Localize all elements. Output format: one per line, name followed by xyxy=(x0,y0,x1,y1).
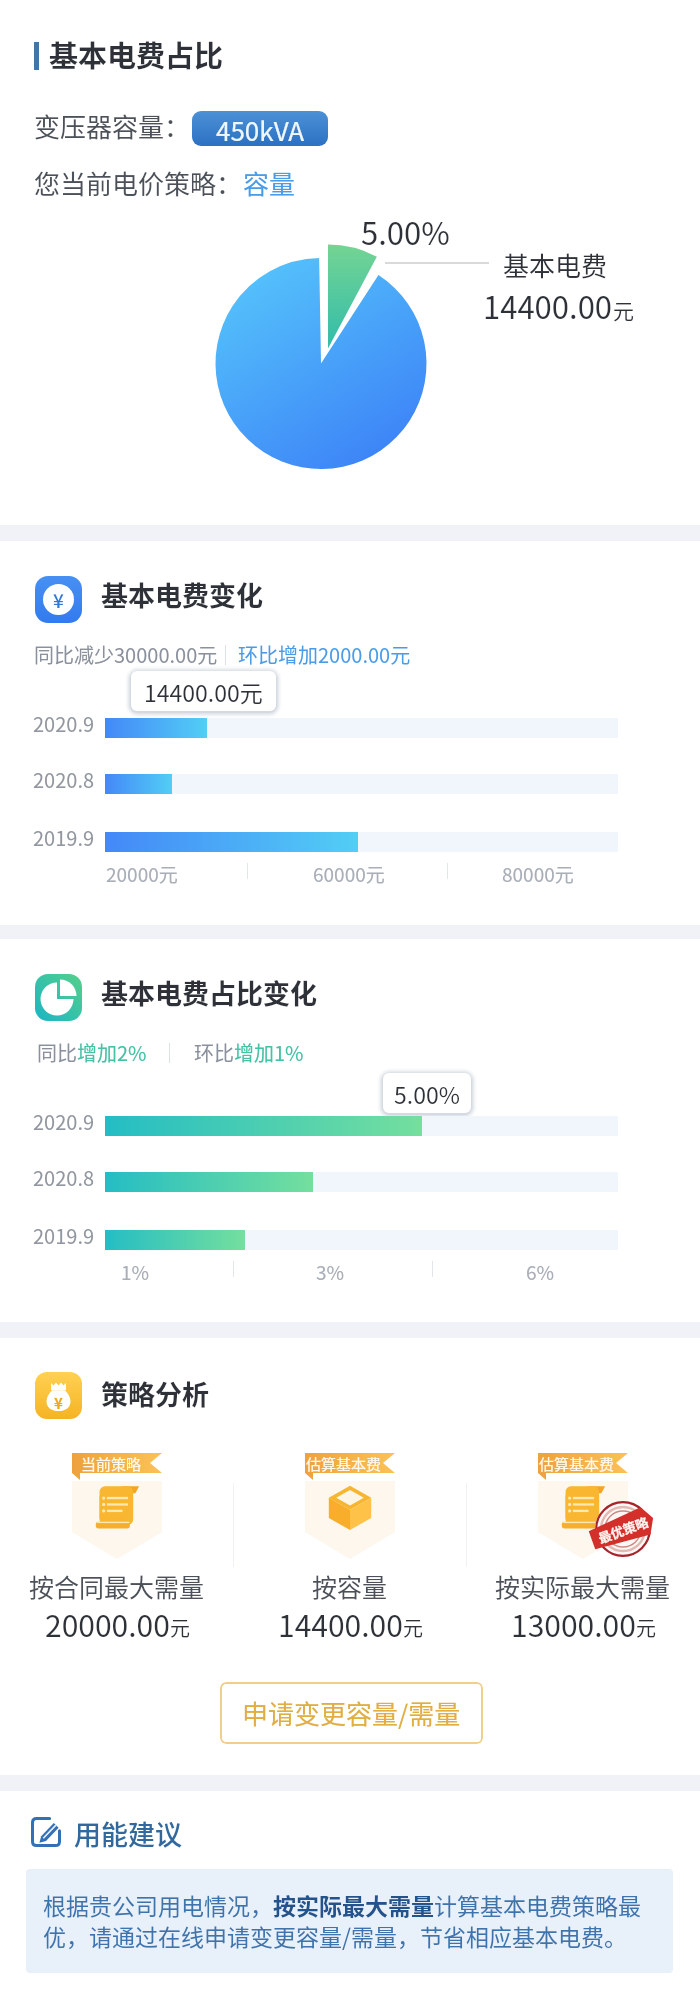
other: 用能建议 xyxy=(31,1817,61,1847)
staticText: 2020.8 xyxy=(33,765,95,794)
staticText: 2020.8 xyxy=(33,1163,95,1192)
staticText: 5.00% xyxy=(361,209,450,254)
staticText: 环比 xyxy=(194,1038,234,1067)
staticText: 用能建议 xyxy=(74,1814,182,1853)
staticText: 估算基本费 xyxy=(306,1453,382,1473)
staticText: 20000元 xyxy=(106,860,178,888)
staticText: 6% xyxy=(526,1258,555,1286)
staticText: 3% xyxy=(316,1258,345,1286)
staticText: 按实际最大需量 xyxy=(495,1568,671,1604)
staticText: 基本电费占比 xyxy=(49,33,224,75)
staticText: 元 xyxy=(170,1613,190,1642)
staticText: 估算基本费 xyxy=(539,1453,615,1473)
staticText: 基本电费变化 xyxy=(101,575,263,614)
staticText: 元 xyxy=(403,1613,423,1642)
staticText: 按合同最大需量 xyxy=(29,1568,205,1604)
staticText: 2019.9 xyxy=(33,823,95,852)
staticText: 13000.00 xyxy=(511,1602,636,1645)
staticText: 450kVA xyxy=(216,111,305,146)
staticText: 当前策略 xyxy=(81,1453,142,1473)
staticText: 最优策略 xyxy=(595,1511,652,1547)
staticText: 您当前电价策略： xyxy=(34,164,243,202)
staticText: 2020.9 xyxy=(33,709,95,738)
staticText: 增加1% xyxy=(234,1038,304,1067)
staticText: ¥ xyxy=(53,586,64,614)
staticText: 同比 xyxy=(37,1038,77,1067)
staticText: 基本电费占比变化 xyxy=(101,973,317,1012)
staticText: 容量 xyxy=(243,164,296,202)
staticText: 按容量 xyxy=(312,1568,388,1604)
staticText: 20000.00 xyxy=(45,1602,170,1645)
staticText: 同比减少30000.00元 xyxy=(34,640,218,669)
staticText: 5.00% xyxy=(394,1077,460,1110)
staticText: 元 xyxy=(636,1613,656,1642)
staticText: 元 xyxy=(613,295,634,325)
button[interactable]: 申请变更容量/需量 xyxy=(220,1682,483,1744)
staticText: 2019.9 xyxy=(33,1221,95,1250)
staticText: 14400.00 xyxy=(483,283,613,328)
staticText: 申请变更容量/需量 xyxy=(242,1694,461,1732)
staticText: 基本电费 xyxy=(503,246,608,284)
staticText: 变压器容量： xyxy=(34,107,191,145)
staticText: 1% xyxy=(121,1258,150,1286)
staticText: 14400.00元 xyxy=(144,675,263,708)
staticText: 增加2% xyxy=(77,1038,147,1067)
staticText: 策略分析 xyxy=(101,1374,209,1413)
staticText: 根据贵公司用电情况，按实际最大需量计算基本电费策略最优，请通过在线申请变更容量/… xyxy=(43,1888,661,1952)
staticText: ¥ xyxy=(54,1392,63,1414)
staticText: 60000元 xyxy=(313,860,385,888)
staticText: 环比增加2000.00元 xyxy=(238,640,411,669)
staticText: 2020.9 xyxy=(33,1107,95,1136)
staticText: 14400.00 xyxy=(278,1602,403,1645)
staticText: 80000元 xyxy=(502,860,574,888)
